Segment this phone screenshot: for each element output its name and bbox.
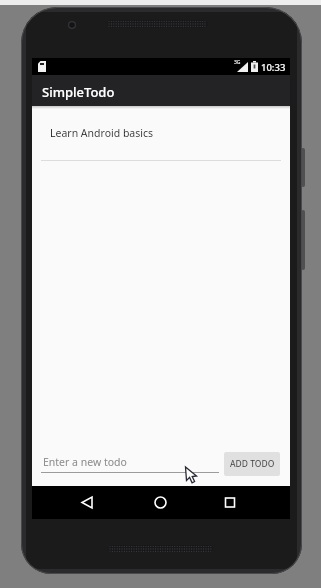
staticText: 10:33 xyxy=(261,61,286,74)
staticText: ADD TODO xyxy=(230,458,275,470)
staticText: Learn Android basics xyxy=(50,126,154,140)
staticText: SimpleTodo xyxy=(42,83,115,101)
staticText: 3G xyxy=(234,59,241,66)
staticText: Enter a new todo xyxy=(43,455,127,469)
